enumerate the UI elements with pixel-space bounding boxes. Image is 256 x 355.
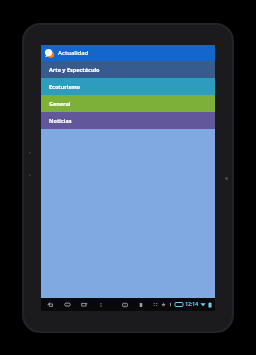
button[interactable]: More options	[96, 299, 106, 310]
button[interactable]: Arte y Espectáculo	[41, 61, 215, 78]
staticText: Arte y Espectáculo	[49, 66, 100, 73]
staticText: General	[49, 100, 71, 107]
button[interactable]: App logo	[41, 45, 215, 61]
button[interactable]: App	[136, 299, 146, 310]
staticText: 12:14	[185, 301, 198, 308]
other: App logo	[44, 48, 55, 59]
button[interactable]: Recent apps	[79, 299, 89, 310]
button[interactable]: Home	[62, 299, 72, 310]
button[interactable]: Noticias	[41, 112, 215, 129]
button[interactable]: General	[41, 95, 215, 112]
staticText: Actualidad	[58, 49, 89, 57]
button[interactable]: Ecoturismo	[41, 78, 215, 95]
staticText: Ecoturismo	[49, 83, 80, 90]
button[interactable]: Screenshot	[120, 299, 130, 310]
button[interactable]: Back	[45, 299, 55, 310]
button[interactable]: Status	[153, 301, 212, 308]
staticText: Noticias	[49, 117, 72, 124]
